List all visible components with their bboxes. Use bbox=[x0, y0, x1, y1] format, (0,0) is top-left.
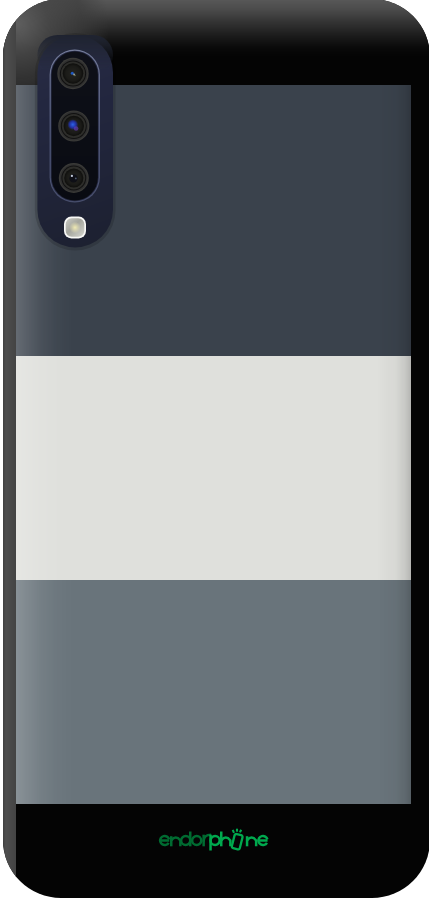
button[interactable]: Samsung Galaxy A50 phone case preview bbox=[0, 0, 429, 900]
